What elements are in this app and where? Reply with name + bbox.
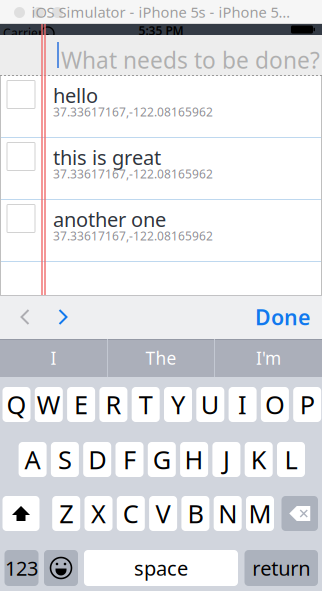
staticText: V bbox=[156, 497, 171, 530]
button[interactable]: I bbox=[229, 387, 257, 422]
staticText: K bbox=[251, 443, 267, 476]
button[interactable]: L bbox=[277, 442, 305, 477]
button[interactable]: another one bbox=[0, 200, 322, 261]
button[interactable]: A bbox=[19, 442, 47, 477]
button[interactable]: The bbox=[108, 339, 214, 377]
button[interactable]: U bbox=[196, 387, 224, 422]
button[interactable]: R bbox=[99, 387, 127, 422]
button[interactable]: O bbox=[261, 387, 289, 422]
staticText: T bbox=[139, 388, 153, 421]
button[interactable]: X bbox=[84, 496, 112, 531]
staticText: iOS Simulator - iPhone 5s - iPhone 5… bbox=[31, 2, 290, 22]
staticText: Carrier bbox=[3, 25, 43, 41]
staticText: I bbox=[238, 388, 247, 421]
staticText: W bbox=[37, 388, 61, 421]
button[interactable]: I'm bbox=[215, 339, 322, 377]
button[interactable]: Delete bbox=[281, 496, 318, 531]
staticText: 37.33617167,-122.08165962 bbox=[53, 166, 213, 182]
staticText: The bbox=[145, 346, 176, 369]
button[interactable]: W bbox=[35, 387, 63, 422]
button[interactable]: Done bbox=[250, 295, 310, 339]
staticText: R bbox=[105, 388, 121, 421]
button[interactable]: D bbox=[83, 442, 111, 477]
button[interactable]: T bbox=[132, 387, 160, 422]
button[interactable]: hello bbox=[0, 76, 322, 137]
button[interactable]: Q bbox=[2, 387, 30, 422]
button[interactable]: return bbox=[244, 550, 318, 586]
staticText: hello bbox=[53, 82, 98, 109]
button[interactable]: I bbox=[0, 339, 107, 377]
button[interactable]: M bbox=[246, 496, 274, 531]
staticText: this is great bbox=[53, 144, 161, 171]
button[interactable]: Z bbox=[52, 496, 80, 531]
staticText: F bbox=[123, 443, 136, 476]
staticText: I bbox=[50, 346, 56, 369]
staticText: O bbox=[265, 388, 285, 421]
staticText: A bbox=[25, 443, 41, 476]
staticText: C bbox=[123, 497, 139, 530]
button[interactable]: N bbox=[214, 496, 242, 531]
staticText: N bbox=[218, 497, 237, 530]
staticText: M bbox=[248, 497, 271, 530]
button[interactable]: Previous field bbox=[8, 295, 42, 339]
button[interactable]: H bbox=[180, 442, 208, 477]
staticText: Z bbox=[59, 497, 73, 530]
staticText: 5:35 PM bbox=[138, 22, 183, 38]
staticText: G bbox=[153, 443, 171, 476]
staticText: space bbox=[134, 555, 188, 581]
staticText: P bbox=[300, 388, 315, 421]
button[interactable]: V bbox=[149, 496, 177, 531]
staticText: 37.33617167,-122.08165962 bbox=[53, 228, 213, 244]
button[interactable]: E bbox=[67, 387, 95, 422]
button[interactable]: S bbox=[51, 442, 79, 477]
button[interactable]: space bbox=[84, 550, 238, 586]
button[interactable]: Emoji keyboard bbox=[44, 550, 78, 586]
staticText: E bbox=[74, 388, 88, 421]
button[interactable]: Shift bbox=[2, 496, 39, 531]
staticText: 123 bbox=[5, 555, 38, 581]
staticText: J bbox=[223, 443, 230, 476]
staticText: H bbox=[185, 443, 204, 476]
button[interactable]: 123 bbox=[4, 550, 38, 586]
staticText: X bbox=[91, 497, 106, 530]
staticText: L bbox=[284, 443, 297, 476]
staticText: another one bbox=[53, 206, 166, 233]
staticText: Q bbox=[6, 388, 26, 421]
button[interactable]: K bbox=[245, 442, 273, 477]
staticText: D bbox=[88, 443, 106, 476]
staticText: U bbox=[201, 388, 220, 421]
staticText: Done bbox=[255, 303, 310, 331]
button[interactable]: P bbox=[293, 387, 321, 422]
staticText: 37.33617167,-122.08165962 bbox=[53, 104, 213, 120]
staticText: What needs to be done? bbox=[61, 45, 320, 75]
staticText: Y bbox=[171, 388, 185, 421]
button[interactable]: this is great bbox=[0, 138, 322, 199]
button[interactable]: C bbox=[117, 496, 145, 531]
button[interactable]: Y bbox=[164, 387, 192, 422]
button[interactable]: J bbox=[212, 442, 240, 477]
button[interactable]: B bbox=[181, 496, 209, 531]
staticText: I'm bbox=[256, 346, 281, 369]
staticText: B bbox=[187, 497, 203, 530]
button[interactable]: G bbox=[148, 442, 176, 477]
button[interactable]: Next field bbox=[46, 295, 80, 339]
staticText: S bbox=[58, 443, 72, 476]
staticText: return bbox=[252, 555, 310, 581]
button[interactable]: F bbox=[115, 442, 143, 477]
